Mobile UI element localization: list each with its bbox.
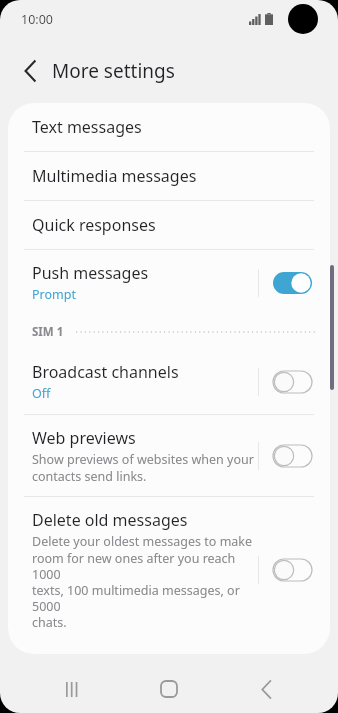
button[interactable]: On [273,272,312,294]
button[interactable]: Off [273,559,312,581]
button[interactable]: Multimedia messages [8,152,330,200]
staticText: Multimedia messages [32,165,197,187]
button[interactable]: Broadcast channels [8,349,330,414]
staticText: Text messages [32,116,142,138]
button[interactable]: Off [273,445,312,467]
button[interactable]: Delete old messages [8,497,330,642]
staticText: Delete your oldest messages to make room… [32,533,258,630]
button[interactable]: Push messages [8,250,330,315]
button[interactable]: Back [12,53,48,89]
button[interactable]: Off [273,371,312,393]
staticText: Quick responses [32,214,156,236]
staticText: Web previews [32,427,136,449]
button[interactable]: Text messages [8,103,330,151]
staticText: 10:00 [21,11,53,28]
staticText: Show previews of websites when your cont… [32,451,254,484]
staticText: Off [32,385,51,402]
staticText: Delete old messages [32,509,188,531]
staticText: Push messages [32,262,149,284]
staticText: More settings [52,58,175,84]
staticText: Broadcast channels [32,361,179,383]
button[interactable]: Web previews [8,415,330,496]
staticText: Prompt [32,286,76,303]
button[interactable]: Back [242,665,290,713]
button[interactable]: Home [145,665,193,713]
staticText: SIM 1 [32,324,64,340]
button[interactable]: Recents [49,665,97,713]
button[interactable]: Quick responses [8,201,330,249]
